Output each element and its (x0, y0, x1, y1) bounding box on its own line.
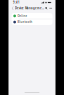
button[interactable]: More (48, 6, 53, 10)
button[interactable]: Back (11, 6, 15, 11)
staticText: Bluetooth (17, 20, 32, 24)
staticText: Device Management (15, 6, 44, 10)
staticText: 9:41 (13, 1, 20, 4)
staticText: Online (17, 14, 27, 18)
button[interactable]: Bluetooth (11, 19, 52, 25)
button[interactable]: Search (44, 6, 48, 10)
button[interactable]: Online (11, 13, 52, 19)
